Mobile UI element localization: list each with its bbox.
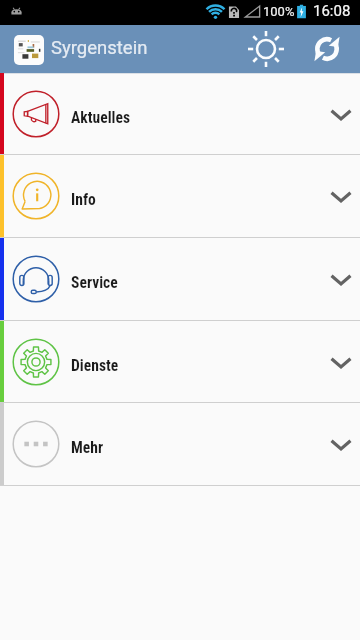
button[interactable]: Brightness bbox=[244, 27, 288, 71]
staticText: Syrgenstein bbox=[51, 37, 148, 59]
staticText: Aktuelles bbox=[71, 109, 131, 127]
button[interactable]: App icon bbox=[14, 35, 44, 65]
button[interactable]: Refresh bbox=[305, 27, 349, 71]
button[interactable]: Service bbox=[0, 238, 360, 320]
staticText: Mehr bbox=[71, 439, 104, 457]
button[interactable]: Info bbox=[0, 155, 360, 237]
staticText: 16:08 bbox=[313, 2, 351, 20]
staticText: Service bbox=[71, 274, 118, 292]
staticText: Info bbox=[71, 191, 96, 209]
button[interactable]: Mehr bbox=[0, 403, 360, 485]
button[interactable]: Aktuelles bbox=[0, 73, 360, 154]
button[interactable]: Dienste bbox=[0, 321, 360, 402]
staticText: 100% bbox=[263, 4, 295, 19]
staticText: Dienste bbox=[71, 357, 119, 375]
